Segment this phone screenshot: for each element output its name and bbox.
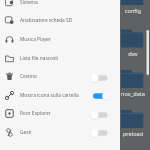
staticText: preload	[119, 130, 147, 138]
staticText: config	[119, 7, 147, 15]
staticText: Cestino	[20, 73, 37, 80]
button[interactable]: Switch on	[90, 89, 110, 103]
button[interactable]: Musica Player	[0, 30, 120, 49]
button[interactable]: Mostra icona sulla cartella	[0, 86, 120, 105]
button[interactable]: Lista file nascosti	[0, 49, 120, 68]
button[interactable]: Sistema	[0, 0, 120, 12]
staticText: Mostra icona sulla cartella	[20, 92, 79, 99]
button[interactable]: Cestino	[0, 67, 120, 86]
staticText: Root Explorer	[20, 110, 51, 117]
button[interactable]: Root Explorer	[0, 104, 120, 123]
button[interactable]: Switch off	[90, 126, 110, 140]
staticText: Analizzatore scheda SD	[20, 17, 73, 24]
staticText: dev	[119, 50, 147, 58]
button[interactable]: Gesti	[0, 123, 120, 142]
staticText: Lista file nascosti	[20, 55, 59, 62]
button[interactable]: config	[118, 0, 148, 17]
staticText: Gesti	[20, 129, 32, 136]
staticText: Musica Player	[20, 36, 52, 43]
button[interactable]: Switch off	[90, 71, 110, 85]
staticText: Sistema	[20, 0, 38, 6]
button[interactable]: preload	[118, 108, 148, 140]
staticText: nox_data	[119, 90, 147, 98]
button[interactable]: nox_data	[118, 68, 148, 100]
button[interactable]: Switch off	[90, 108, 110, 122]
button[interactable]: Analizzatore scheda SD	[0, 11, 120, 30]
button[interactable]: dev	[118, 28, 148, 60]
